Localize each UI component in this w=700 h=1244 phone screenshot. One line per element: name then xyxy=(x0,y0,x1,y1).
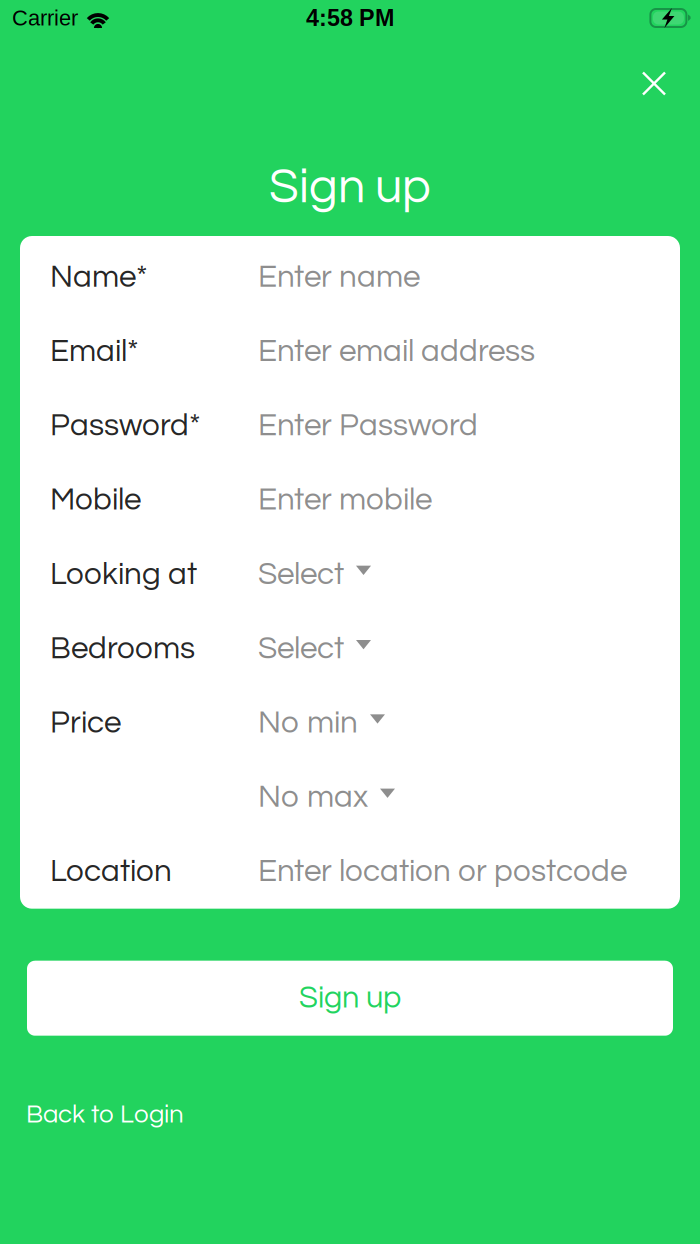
staticText: Name* xyxy=(50,261,148,293)
staticText: Email* xyxy=(50,335,139,368)
staticText: No max xyxy=(258,781,368,813)
staticText: Location xyxy=(50,855,172,888)
button[interactable] xyxy=(50,760,650,834)
staticText: Enter mobile xyxy=(258,484,432,516)
staticText: 4:58 PM xyxy=(306,5,394,31)
staticText: Enter name xyxy=(258,261,420,293)
staticText: Back to Login xyxy=(26,1101,184,1128)
staticText: Sign up xyxy=(299,982,401,1014)
staticText: No min xyxy=(258,707,358,739)
staticText: Enter location or postcode xyxy=(258,855,627,888)
button[interactable]: Back to Login xyxy=(0,1088,700,1142)
staticText: Mobile xyxy=(50,484,141,516)
staticText: Enter Password xyxy=(258,410,478,442)
button[interactable]: Looking at xyxy=(50,537,650,611)
button[interactable]: Email* xyxy=(50,314,650,389)
staticText: Sign up xyxy=(269,163,431,212)
button[interactable]: Location xyxy=(50,834,650,909)
button[interactable]: Price xyxy=(50,686,650,760)
staticText: Select xyxy=(258,632,344,665)
button[interactable]: Sign up xyxy=(27,961,673,1036)
button[interactable]: Close xyxy=(630,57,678,105)
staticText: Enter email address xyxy=(258,335,535,368)
button[interactable]: Mobile xyxy=(50,463,650,537)
button[interactable]: Name* xyxy=(50,240,650,314)
staticText: Price xyxy=(50,707,121,739)
staticText: Carrier xyxy=(12,6,78,30)
staticText: Password* xyxy=(50,410,201,442)
staticText: Looking at xyxy=(50,558,197,590)
staticText: Bedrooms xyxy=(50,632,195,665)
button[interactable]: Password* xyxy=(50,389,650,463)
staticText: Select xyxy=(258,558,344,590)
button[interactable]: Bedrooms xyxy=(50,611,650,686)
